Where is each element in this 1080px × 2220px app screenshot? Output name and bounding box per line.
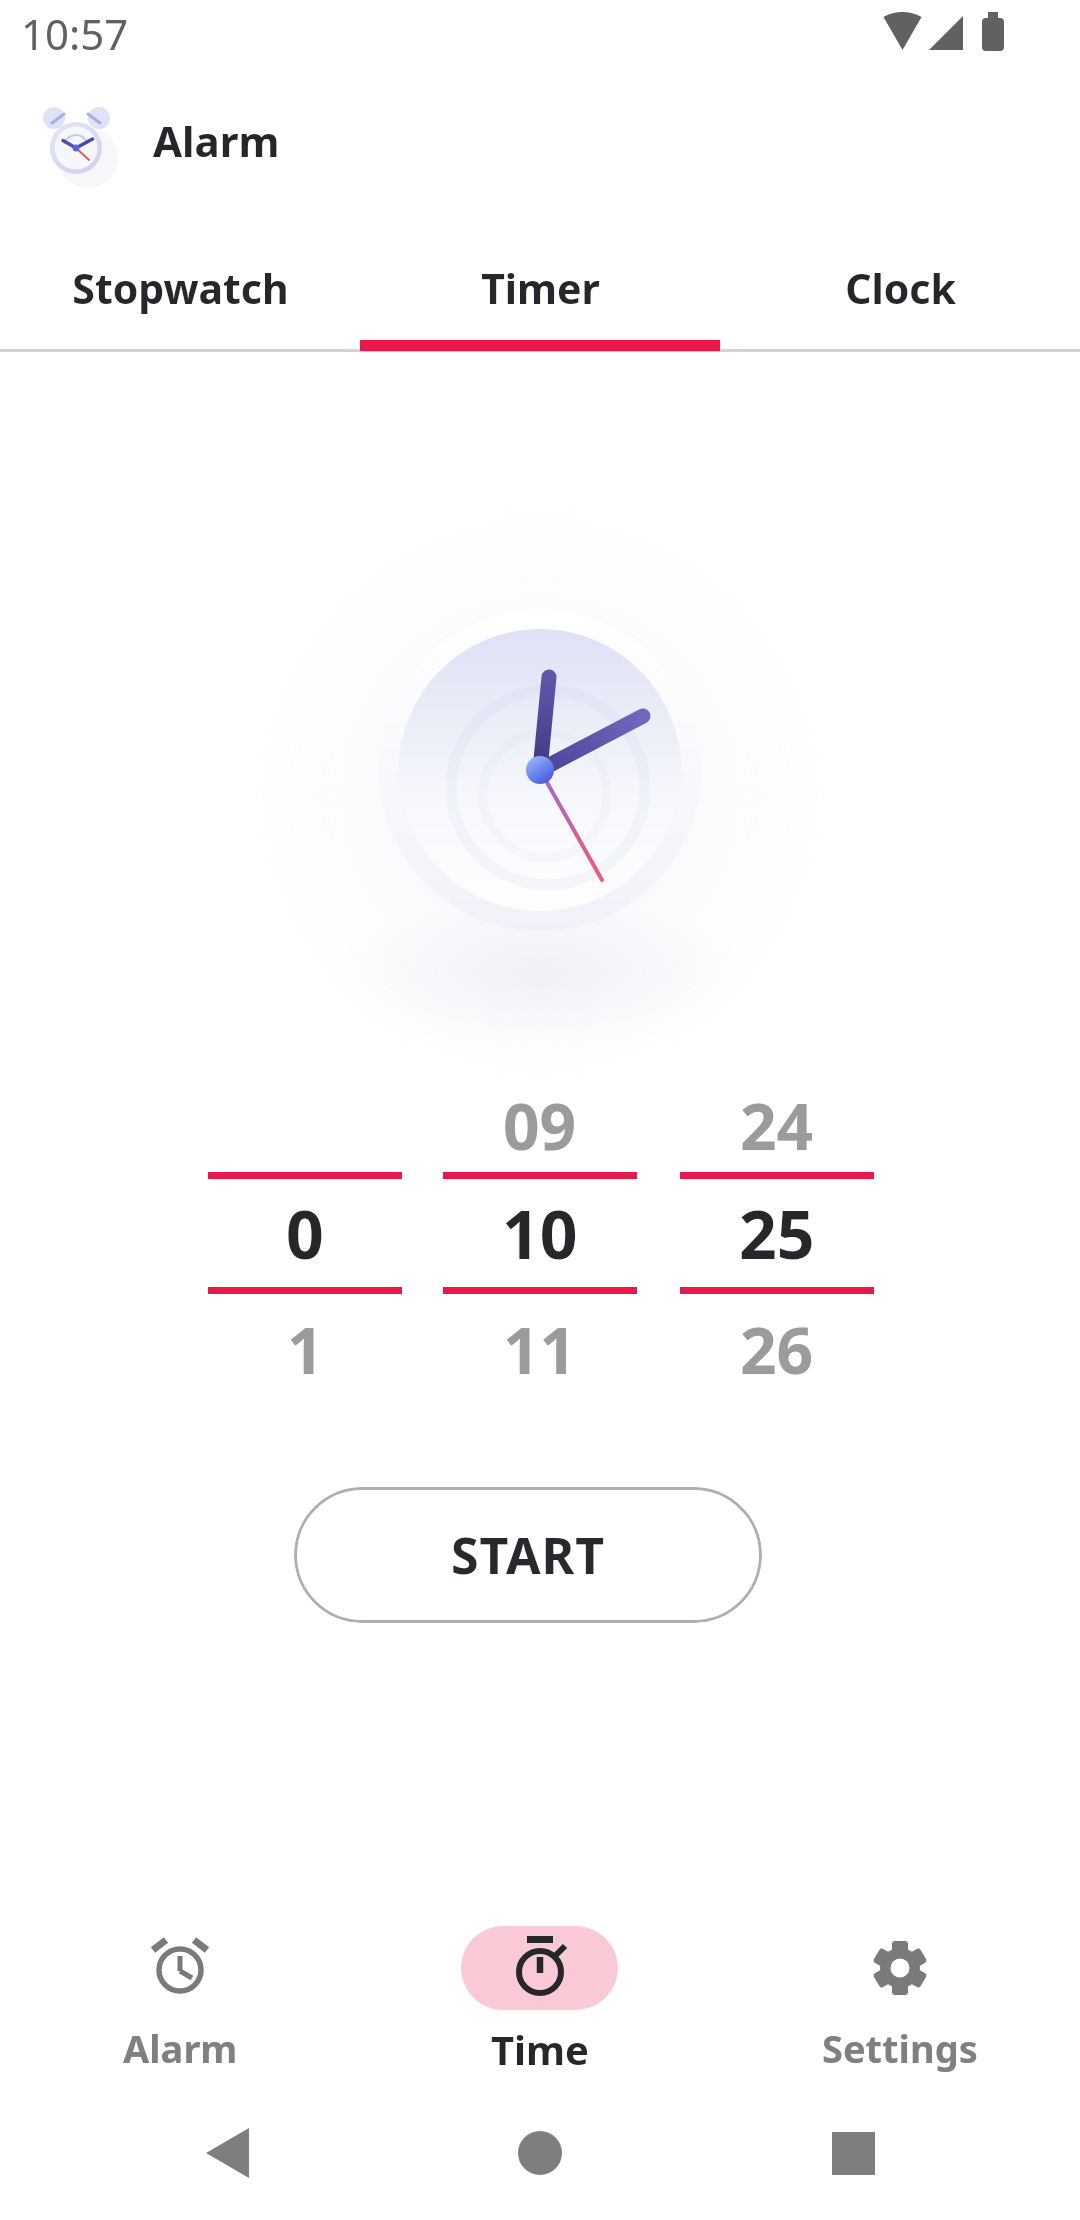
staticText: 0	[286, 1188, 324, 1278]
button[interactable]: 0	[208, 1187, 402, 1279]
staticText: START	[451, 1521, 606, 1589]
button[interactable]	[440, 1910, 640, 2080]
button[interactable]: Stopwatch	[0, 250, 360, 326]
staticText: 24	[740, 1082, 814, 1169]
staticText: 09	[503, 1082, 577, 1169]
button[interactable]	[490, 2103, 590, 2203]
staticText: Alarm	[153, 112, 280, 169]
staticText: 1	[287, 1306, 324, 1393]
staticText: 10	[502, 1188, 578, 1278]
button[interactable]	[80, 1910, 280, 2080]
button[interactable]	[803, 2103, 903, 2203]
button[interactable]: Clock	[720, 250, 1080, 326]
staticText: 26	[740, 1306, 814, 1393]
staticText: Alarm	[123, 2022, 238, 2072]
staticText: Clock	[845, 260, 956, 316]
button[interactable]	[800, 1910, 1000, 2080]
staticText: 10:57	[21, 5, 129, 62]
button[interactable]	[178, 2103, 278, 2203]
button[interactable]: 25	[680, 1187, 874, 1279]
staticText: 25	[739, 1188, 815, 1278]
staticText: Settings	[822, 2022, 978, 2072]
staticText: 11	[503, 1306, 577, 1393]
staticText: Time	[491, 2022, 589, 2074]
staticText: Stopwatch	[72, 260, 289, 316]
button[interactable]: 10	[443, 1187, 637, 1279]
staticText: Timer	[481, 260, 600, 316]
button[interactable]: Timer	[360, 250, 720, 326]
button[interactable]: START	[294, 1487, 762, 1623]
